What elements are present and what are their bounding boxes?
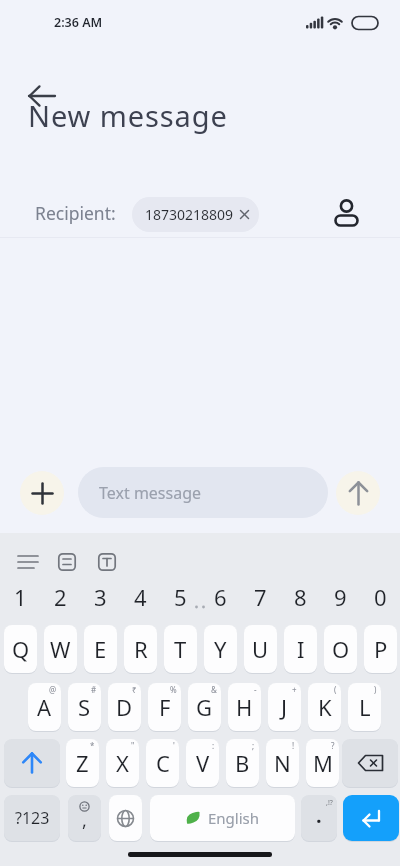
button[interactable]: W xyxy=(44,625,77,673)
staticText: 2:36 AM xyxy=(54,14,103,31)
staticText: : xyxy=(212,740,215,751)
button[interactable]: D xyxy=(108,683,141,731)
staticText: R xyxy=(134,634,148,664)
button[interactable] xyxy=(91,546,123,578)
staticText: 18730218809 xyxy=(145,205,234,224)
button[interactable]: M xyxy=(306,739,339,787)
staticText: ?123 xyxy=(15,807,50,829)
button[interactable]: , xyxy=(68,795,101,841)
button[interactable] xyxy=(51,546,83,578)
button[interactable]: 9 xyxy=(320,574,360,620)
button[interactable]: 3 xyxy=(80,574,120,620)
staticText: ( xyxy=(334,684,337,695)
button[interactable]: S xyxy=(68,683,101,731)
staticText: & xyxy=(211,684,217,695)
staticText: F xyxy=(159,692,171,722)
staticText: E xyxy=(94,634,107,664)
staticText: ; xyxy=(252,740,255,751)
button[interactable]: C xyxy=(146,739,179,787)
button[interactable]: 5 xyxy=(160,574,200,620)
button[interactable] xyxy=(20,471,64,515)
button[interactable]: 18730218809 xyxy=(132,197,259,232)
staticText: ) xyxy=(374,684,377,695)
button[interactable]: 6 xyxy=(200,574,240,620)
staticText: A xyxy=(37,692,52,722)
button[interactable]: E xyxy=(84,625,117,673)
button[interactable]: H xyxy=(228,683,261,731)
button[interactable]: L xyxy=(348,683,381,731)
staticText: ' xyxy=(173,740,175,751)
button[interactable]: 2 xyxy=(40,574,80,620)
staticText: I xyxy=(297,634,305,664)
button[interactable]: ?123 xyxy=(4,795,60,841)
staticText: C xyxy=(156,748,170,778)
button[interactable]: O xyxy=(324,625,357,673)
button[interactable]: 7 xyxy=(240,574,280,620)
button[interactable]: Y xyxy=(204,625,237,673)
staticText: Z xyxy=(76,748,89,778)
staticText: K xyxy=(318,692,332,722)
staticText: D xyxy=(116,692,133,722)
staticText: @ xyxy=(49,684,57,695)
button[interactable] xyxy=(12,546,44,578)
button[interactable]: Z xyxy=(66,739,99,787)
button[interactable]: Q xyxy=(4,625,37,673)
button[interactable]: 4 xyxy=(120,574,160,620)
button[interactable]: Text message xyxy=(78,467,328,518)
button[interactable] xyxy=(4,739,60,787)
staticText: B xyxy=(235,748,250,778)
staticText: " xyxy=(131,740,135,751)
staticText: W xyxy=(50,634,71,664)
button[interactable]: F xyxy=(148,683,181,731)
button[interactable]: English xyxy=(150,795,295,841)
staticText: English xyxy=(208,808,260,828)
staticText: P xyxy=(374,634,388,664)
staticText: Text message xyxy=(99,482,202,504)
staticText: G xyxy=(196,692,213,722)
staticText: M xyxy=(313,748,333,778)
staticText: 0 xyxy=(374,582,387,612)
staticText: # xyxy=(91,684,97,695)
button[interactable]: P xyxy=(364,625,397,673)
button[interactable]: A xyxy=(28,683,61,731)
button[interactable]: J xyxy=(268,683,301,731)
staticText: ? xyxy=(331,740,335,751)
button[interactable]: B xyxy=(226,739,259,787)
button[interactable]: 0 xyxy=(360,574,400,620)
staticText: J xyxy=(281,692,288,722)
staticText: + xyxy=(292,684,297,695)
staticText: L xyxy=(359,692,371,722)
staticText: 2 xyxy=(54,582,67,612)
staticText: 8 xyxy=(294,582,307,612)
staticText: 7 xyxy=(254,582,267,612)
staticText: V xyxy=(196,748,210,778)
button[interactable] xyxy=(343,795,399,841)
button[interactable]: R xyxy=(124,625,157,673)
button[interactable] xyxy=(336,471,380,515)
button[interactable]: U xyxy=(244,625,277,673)
button[interactable]: N xyxy=(266,739,299,787)
button[interactable]: V xyxy=(186,739,219,787)
staticText: H xyxy=(236,692,253,722)
button[interactable] xyxy=(342,739,398,787)
button[interactable]: 1 xyxy=(0,574,40,620)
button[interactable]: T xyxy=(164,625,197,673)
button[interactable]: . xyxy=(301,795,337,841)
staticText: S xyxy=(78,692,91,722)
button[interactable]: G xyxy=(188,683,221,731)
staticText: ,!? xyxy=(326,798,333,808)
staticText: 6 xyxy=(214,582,227,612)
button[interactable]: 8 xyxy=(280,574,320,620)
staticText: Recipient: xyxy=(35,201,116,225)
button[interactable] xyxy=(20,78,60,114)
staticText: X xyxy=(116,748,129,778)
staticText: 4 xyxy=(134,582,147,612)
button[interactable]: I xyxy=(284,625,317,673)
button[interactable]: X xyxy=(106,739,139,787)
staticText: . xyxy=(316,802,322,829)
button[interactable] xyxy=(109,795,142,841)
button[interactable]: K xyxy=(308,683,341,731)
staticText: - xyxy=(254,684,257,695)
button[interactable] xyxy=(330,196,364,230)
staticText: 5 xyxy=(174,582,187,612)
